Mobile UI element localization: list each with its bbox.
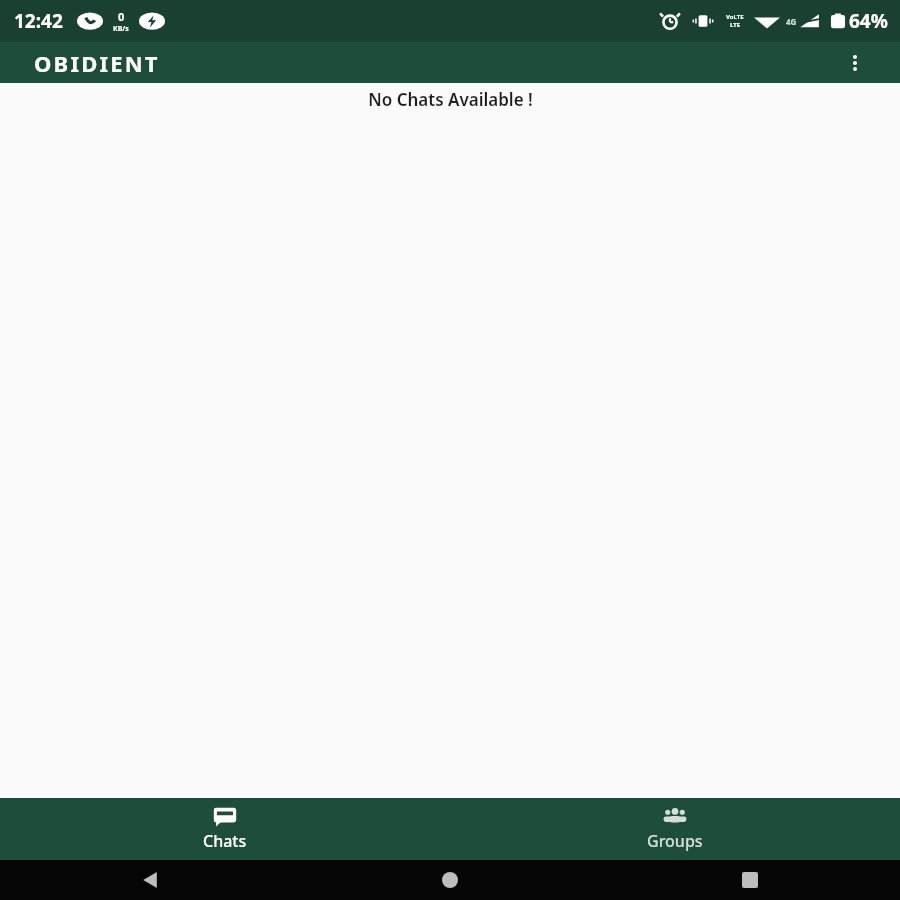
staticText: 0 [118, 9, 125, 24]
button[interactable]: More options [838, 46, 872, 80]
staticText: 64% [849, 8, 888, 34]
button[interactable]: Groups [450, 798, 900, 860]
button[interactable]: Back [128, 860, 172, 900]
staticText: Chats [203, 830, 247, 852]
staticText: OBIDIENT [34, 48, 160, 78]
staticText: 4G [786, 16, 797, 27]
button[interactable]: Recent apps [728, 860, 772, 900]
staticText: Groups [647, 830, 703, 852]
staticText: KB/s [113, 24, 129, 34]
staticText: LTE [730, 21, 741, 29]
staticText: 12:42 [14, 8, 63, 34]
button[interactable]: Home [428, 860, 472, 900]
staticText: VoLTE [726, 13, 744, 21]
button[interactable]: Chats [0, 798, 450, 860]
staticText: No Chats Available ! [368, 88, 533, 111]
